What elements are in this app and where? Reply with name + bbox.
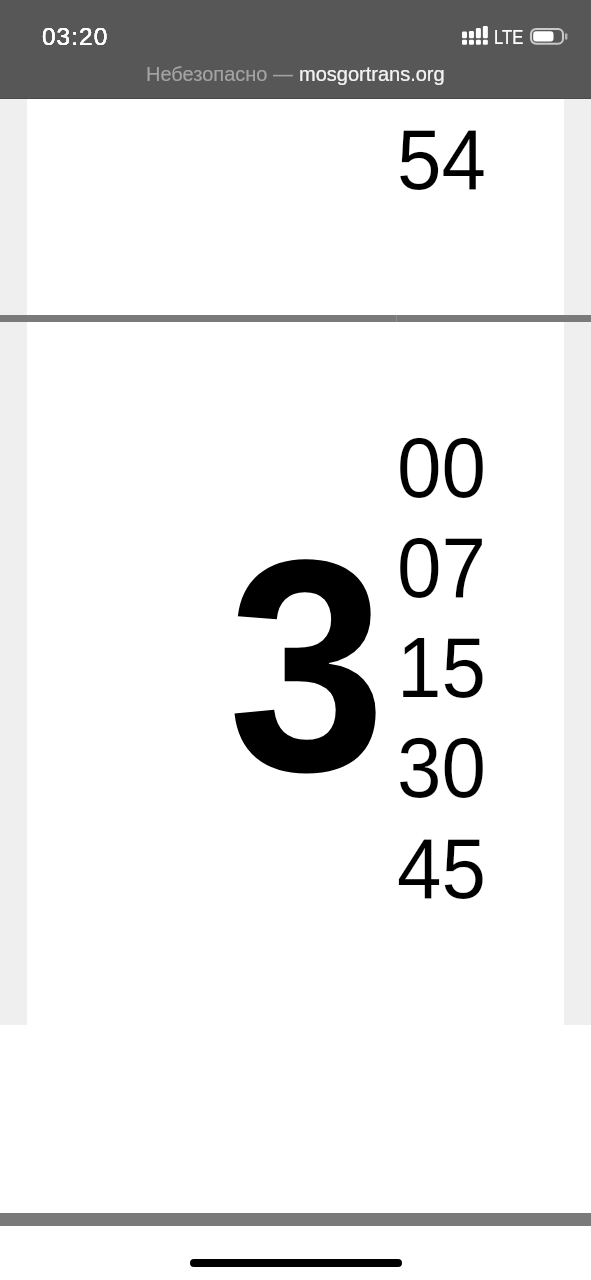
staticText: 07 — [397, 519, 486, 615]
button[interactable]: 30 — [382, 718, 508, 818]
button[interactable]: 3 — [200, 545, 400, 795]
staticText: 03:20 — [42, 24, 109, 50]
staticText: 15 — [397, 619, 486, 715]
other: Cellular signal, LTE, battery — [460, 22, 572, 48]
staticText: 45 — [397, 820, 486, 916]
staticText: Небезопасно — — [146, 63, 299, 85]
button[interactable]: 00 — [382, 418, 508, 518]
staticText: 54 — [397, 111, 486, 207]
staticText: 3 — [228, 497, 388, 857]
staticText: 00 — [397, 419, 486, 515]
button[interactable]: 07 — [382, 518, 508, 618]
staticText: 30 — [397, 719, 486, 815]
staticText: LTE — [494, 26, 524, 48]
button[interactable]: 15 — [382, 618, 508, 718]
button[interactable]: 45 — [382, 819, 508, 919]
button[interactable]: 54 — [27, 99, 564, 318]
button[interactable]: 54 — [382, 110, 508, 210]
staticText: 03:20 — [42, 24, 109, 50]
button[interactable]: Небезопасно — — [146, 63, 445, 85]
other: Home indicator — [190, 1259, 402, 1267]
staticText: mosgortrans.org — [299, 63, 445, 85]
